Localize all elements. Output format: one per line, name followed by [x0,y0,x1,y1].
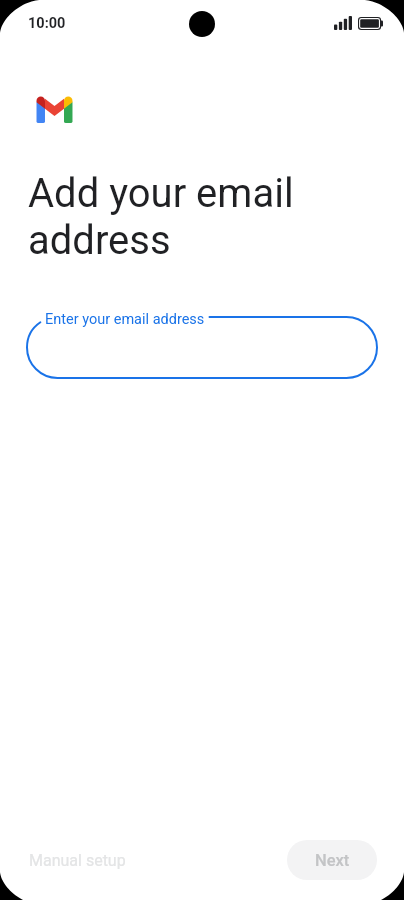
staticText: Next [315,851,350,870]
button[interactable]: Next [287,840,377,880]
button[interactable]: Manual setup [20,844,135,877]
staticText: Add your email address [28,170,294,264]
staticText: 10:00 [28,15,66,32]
staticText: Manual setup [29,851,126,870]
staticText: Enter your email address [45,311,205,328]
button[interactable]: Enter your email address [26,316,378,379]
